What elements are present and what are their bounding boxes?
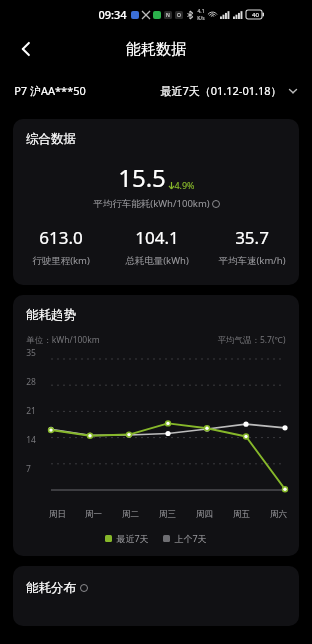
staticText: 周六 <box>270 509 287 520</box>
staticText: 周三 <box>159 509 176 520</box>
staticText: O <box>177 12 181 19</box>
staticText: 7 <box>26 463 31 475</box>
staticText: 40 <box>252 11 259 19</box>
staticText: 周日 <box>49 509 66 520</box>
staticText: 4.1 <box>197 8 205 15</box>
staticText: 能耗分布 <box>26 580 76 596</box>
staticText: 单位：kWh/100km <box>26 334 100 346</box>
staticText: 上个7天 <box>174 532 207 544</box>
staticText: 周二 <box>122 509 139 520</box>
staticText: 能耗趋势 <box>26 307 76 323</box>
staticText: 综合数据 <box>26 131 76 147</box>
button[interactable]: 最近7天（01.12-01.18） <box>160 83 298 98</box>
staticText: 613.0 <box>39 226 83 249</box>
staticText: 15.5 <box>118 161 166 194</box>
staticText: K/s <box>197 15 205 22</box>
staticText: 平均车速(km/h) <box>218 254 286 267</box>
staticText: 最近7天 <box>116 532 149 544</box>
staticText: 14 <box>26 434 36 446</box>
staticText: 最近7天（01.12-01.18） <box>160 83 282 98</box>
staticText: 平均气温：5.7(℃) <box>217 334 286 346</box>
staticText: 35 <box>26 347 36 359</box>
staticText: 104.1 <box>135 226 179 249</box>
staticText: 总耗电量(kWh) <box>125 254 189 267</box>
button[interactable]: Back <box>8 31 44 67</box>
staticText: 行驶里程(km) <box>32 254 90 267</box>
staticText: N <box>166 12 170 19</box>
button[interactable]: P7 沪AA***50 <box>14 83 86 98</box>
staticText: 周一 <box>85 509 102 520</box>
staticText: 平均行车能耗(kWh/100km) <box>93 197 210 210</box>
staticText: 周四 <box>196 509 213 520</box>
staticText: 09:34 <box>98 7 127 22</box>
staticText: 周五 <box>233 509 250 520</box>
staticText: 4.9% <box>174 179 195 191</box>
staticText: 35.7 <box>235 226 269 249</box>
staticText: 能耗数据 <box>126 40 186 59</box>
staticText: 21 <box>26 405 36 417</box>
staticText: P7 沪AA***50 <box>14 83 86 98</box>
staticText: 28 <box>26 376 36 388</box>
